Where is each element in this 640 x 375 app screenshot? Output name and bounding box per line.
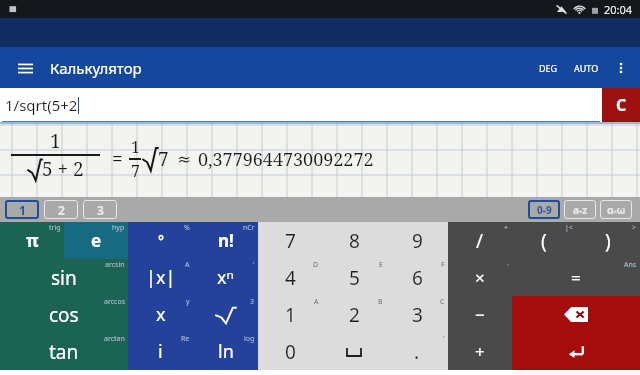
staticText: 1 [285,302,296,328]
button[interactable]: ln [193,333,258,370]
staticText: sin [51,265,77,291]
button[interactable]: ) [576,222,640,259]
staticText: |x| [146,265,176,290]
button[interactable]: C [602,88,640,122]
staticText: × [475,266,485,289]
staticText: 0 [285,339,296,365]
staticText: = [112,146,123,172]
button[interactable]: = [512,259,640,296]
staticText: tan [49,339,79,365]
staticText: 0-9 [537,203,552,217]
button[interactable]: + [448,333,512,370]
button[interactable]: π [0,222,64,259]
staticText: AUTO [574,62,599,74]
staticText: . [414,339,420,365]
button[interactable]: cos [0,296,128,333]
button[interactable]: − [448,296,512,333]
button[interactable]: xⁿ [193,259,258,296]
staticText: n! [218,229,234,252]
staticText: 0,3779644730092272 [198,147,374,172]
staticText: arccos [104,297,125,307]
staticText: / [476,228,484,254]
button[interactable]: n! [193,222,258,259]
staticText: ( [541,228,547,254]
button[interactable]: Enter [512,333,640,370]
button[interactable]: i [128,333,193,370]
staticText: 7 [285,228,296,254]
staticText: 1 [50,128,61,154]
button[interactable]: a-z [564,200,596,219]
staticText: ° [158,231,164,250]
staticText: 5 + 2 [42,156,84,182]
button[interactable]: |x| [128,259,193,296]
button[interactable]: 2 [44,200,78,219]
button[interactable]: 4 [258,259,322,296]
button[interactable]: AUTO [569,56,604,80]
button[interactable]: 3 [193,296,258,333]
button[interactable]: ( [512,222,576,259]
staticText: xⁿ [217,265,234,290]
staticText: B [378,297,383,307]
staticText: + [475,340,485,363]
button[interactable]: 0 [258,333,322,370]
staticText: 4 [285,265,296,291]
staticText: ) [605,228,611,254]
staticText: nCr [243,223,255,233]
button[interactable]: 0-9 [528,200,560,219]
staticText: x [156,302,166,327]
staticText: hyp [112,223,125,233]
staticText: 1 [19,202,26,218]
staticText: i [158,339,163,364]
staticText: 1/sqrt(5+2 [5,95,78,115]
staticText: A [185,260,190,270]
staticText: E [379,260,383,270]
button[interactable]: 3 [83,200,117,219]
button[interactable]: 2 [322,296,386,333]
staticText: cos [49,302,79,328]
button[interactable]: e [64,222,128,259]
staticText: 3 [250,297,255,307]
staticText: y [186,297,190,307]
staticText: 3 [97,202,104,218]
button[interactable]: 6 [386,259,448,296]
staticText: ' [443,334,445,344]
staticText: π [26,229,39,252]
staticText: arctan [104,334,125,344]
button[interactable]: 9 [386,222,448,259]
button[interactable]: 7 [258,222,322,259]
button[interactable]: 1/sqrt(5+2 [0,88,602,122]
button[interactable]: 3 [386,296,448,333]
button[interactable]: . [386,333,448,370]
staticText: 20:04 [604,2,633,17]
staticText: 5 [349,265,360,291]
staticText: % [184,223,190,233]
button[interactable]: More options [608,55,634,81]
button[interactable]: 5 [322,259,386,296]
staticText: |< [565,223,573,233]
staticText: 8 [349,228,360,254]
button[interactable]: tan [0,333,128,370]
button[interactable]: × [448,259,512,296]
button[interactable]: α-ω [600,200,632,219]
staticText: C [440,297,445,307]
staticText: 9 [412,228,423,254]
staticText: DEG [539,62,558,74]
button[interactable] [322,333,386,370]
button[interactable]: 1 [5,200,39,219]
staticText: D [313,260,319,270]
staticText: α-ω [607,203,626,217]
staticText: log [244,334,255,344]
staticText: ≈ [177,149,192,169]
button[interactable]: ° [128,222,193,259]
button[interactable]: Menu [10,53,40,83]
button[interactable]: sin [0,259,128,296]
button[interactable]: 1 [258,296,322,333]
button[interactable]: / [448,222,512,259]
staticText: Ans [624,260,637,270]
button[interactable]: x [128,296,193,333]
button[interactable]: 8 [322,222,386,259]
staticText: 7 [158,146,169,172]
button[interactable]: Backspace [512,296,640,333]
staticText: Калькулятор [50,58,142,78]
button[interactable]: DEG [534,56,563,80]
